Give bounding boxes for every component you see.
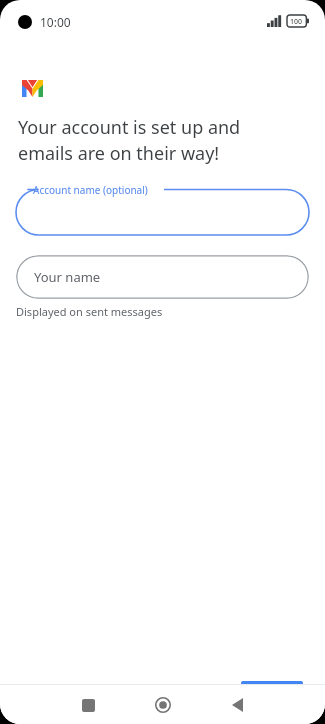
button[interactable]: Back bbox=[221, 689, 253, 721]
staticText: Your name bbox=[34, 268, 101, 286]
button[interactable]: NEXT bbox=[241, 681, 303, 708]
staticText: 10:00 bbox=[40, 14, 71, 30]
staticText: 100 bbox=[290, 17, 303, 27]
staticText: Displayed on sent messages bbox=[16, 304, 163, 319]
button[interactable]: Home bbox=[147, 689, 179, 721]
button[interactable]: Account name (optional) bbox=[16, 183, 309, 235]
staticText: Account name (optional) bbox=[33, 183, 148, 197]
button[interactable]: Recent apps bbox=[72, 689, 104, 721]
button[interactable]: Your name bbox=[16, 255, 309, 299]
staticText: Your account is set up and emails are on… bbox=[18, 115, 241, 165]
